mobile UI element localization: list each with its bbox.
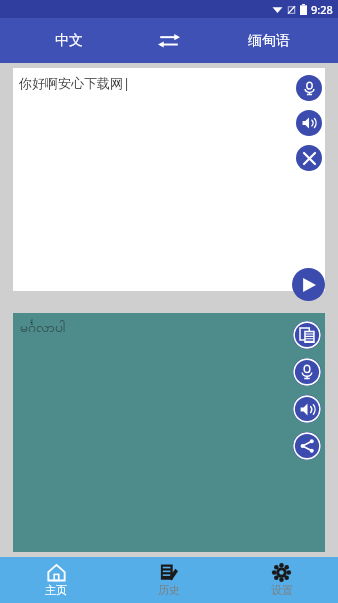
- button[interactable]: Speak: [296, 110, 322, 136]
- button[interactable]: Copy: [293, 321, 321, 349]
- staticText: 你好啊安心下载网|: [19, 74, 131, 92]
- staticText: မင်္ဂလာပါ: [20, 318, 66, 339]
- button[interactable]: 历史: [112, 557, 225, 603]
- button[interactable]: Speak: [293, 395, 321, 423]
- button[interactable]: Swap languages: [138, 18, 200, 63]
- staticText: 9:28: [311, 2, 333, 17]
- button[interactable]: 缅甸语: [200, 18, 338, 63]
- staticText: 中文: [55, 32, 83, 50]
- button[interactable]: 中文: [0, 18, 138, 63]
- button[interactable]: 设置: [225, 557, 338, 603]
- button[interactable]: Translate: [292, 268, 325, 301]
- staticText: 主页: [45, 583, 67, 597]
- button[interactable]: Voice input: [293, 358, 321, 386]
- staticText: 缅甸语: [248, 32, 290, 50]
- button[interactable]: Voice input: [296, 75, 322, 101]
- staticText: 设置: [271, 583, 293, 597]
- button[interactable]: Share: [293, 432, 321, 460]
- button[interactable]: Clear: [296, 145, 322, 171]
- staticText: 历史: [158, 583, 180, 597]
- button[interactable]: 主页: [0, 557, 112, 603]
